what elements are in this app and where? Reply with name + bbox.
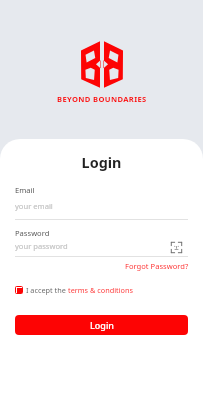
- staticText: your password: [15, 241, 68, 251]
- staticText: BEYOND BOUNDARIES: [57, 94, 147, 104]
- staticText: Login: [0, 153, 203, 173]
- button[interactable]: Face ID login: [170, 241, 183, 254]
- staticText: Password: [15, 228, 50, 238]
- staticText: Forgot Password?: [125, 261, 189, 271]
- staticText: terms & conditions: [68, 285, 133, 295]
- staticText: your email: [15, 201, 53, 211]
- staticText: Email: [15, 185, 35, 195]
- button[interactable]: Forgot Password?: [0, 259, 203, 273]
- button[interactable]: Login: [15, 315, 188, 335]
- staticText: I accept the: [26, 285, 68, 295]
- staticText: Login: [90, 319, 114, 331]
- button[interactable]: I accept the: [15, 284, 133, 296]
